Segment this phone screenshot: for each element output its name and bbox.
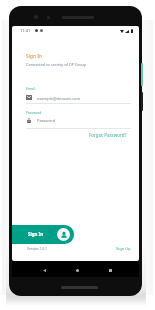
button[interactable]: Sign Up	[116, 246, 131, 251]
staticText: Version 1.0.1	[27, 246, 47, 250]
button[interactable]: Sign In	[12, 225, 74, 244]
button[interactable]: Recent apps	[104, 264, 116, 276]
staticText: Forgot Password?	[89, 132, 127, 138]
button[interactable]: Home	[71, 264, 83, 276]
staticText: Connected to society of OP Group	[26, 62, 87, 67]
staticText: Sign Up	[116, 246, 131, 251]
staticText: Password	[26, 110, 42, 115]
button[interactable]: Back	[38, 264, 50, 276]
staticText: Password	[37, 118, 56, 123]
staticText: 11:41	[20, 28, 31, 33]
button[interactable]: Forgot Password?	[89, 132, 127, 138]
staticText: Sign In	[26, 53, 42, 60]
staticText: example@domain.com	[37, 96, 81, 101]
staticText: Sign In	[28, 231, 44, 237]
staticText: Email	[26, 86, 35, 91]
